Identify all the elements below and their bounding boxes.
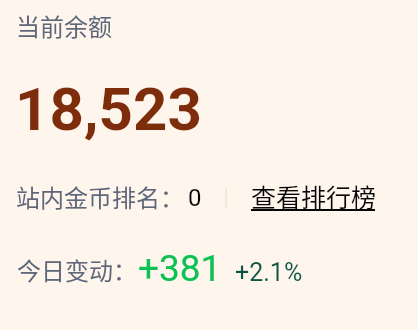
staticText: +2.1%: [235, 258, 303, 287]
staticText: 今日变动：: [17, 252, 137, 287]
staticText: 0: [188, 184, 202, 212]
staticText: 当前余额: [16, 8, 112, 43]
staticText: 站内金币排名：: [16, 179, 184, 214]
staticText: 18,523: [15, 74, 202, 144]
staticText: +381: [138, 247, 222, 290]
staticText: 查看排行榜: [251, 178, 377, 214]
button[interactable]: 查看排行榜: [251, 178, 377, 214]
